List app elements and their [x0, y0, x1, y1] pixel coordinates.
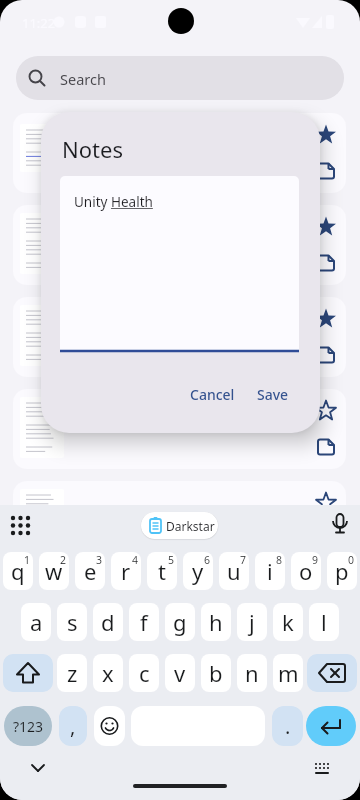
- button[interactable]: .: [272, 706, 303, 746]
- button[interactable]: d: [93, 603, 123, 641]
- staticText: Save: [257, 385, 289, 404]
- button[interactable]: Search: [16, 56, 344, 100]
- button[interactable]: f: [129, 603, 159, 641]
- staticText: h: [209, 607, 223, 637]
- button[interactable]: z: [57, 654, 87, 692]
- button[interactable]: [306, 706, 356, 746]
- staticText: 9: [312, 553, 319, 567]
- staticText: Unity Health: [74, 193, 153, 211]
- button[interactable]: Save: [247, 380, 299, 408]
- button[interactable]: b: [201, 654, 231, 692]
- staticText: s: [67, 607, 78, 637]
- staticText: 5: [168, 553, 175, 567]
- staticText: z: [67, 658, 78, 688]
- button[interactable]: n: [237, 654, 267, 692]
- staticText: b: [209, 658, 223, 688]
- staticText: l: [321, 607, 327, 637]
- staticText: j: [249, 607, 255, 637]
- staticText: g: [173, 607, 187, 637]
- button[interactable]: g: [165, 603, 195, 641]
- staticText: n: [245, 658, 259, 688]
- button[interactable]: [13, 481, 346, 561]
- button[interactable]: ?123: [4, 706, 52, 746]
- button[interactable]: [75, 552, 105, 590]
- button[interactable]: s: [57, 603, 87, 641]
- button[interactable]: j: [237, 603, 267, 641]
- button[interactable]: [183, 552, 213, 590]
- staticText: v: [174, 658, 186, 688]
- staticText: 2: [60, 553, 67, 567]
- button[interactable]: m: [273, 654, 303, 692]
- button[interactable]: k: [273, 603, 303, 641]
- staticText: Darkstar: [166, 518, 215, 534]
- staticText: d: [101, 607, 115, 637]
- staticText: x: [102, 658, 114, 688]
- staticText: e: [84, 556, 97, 586]
- staticText: p: [335, 556, 349, 586]
- button[interactable]: [94, 706, 125, 746]
- button[interactable]: [255, 552, 285, 590]
- button[interactable]: [13, 205, 346, 285]
- button[interactable]: [291, 552, 321, 590]
- staticText: c: [139, 658, 150, 688]
- staticText: 0: [348, 553, 355, 567]
- button[interactable]: [327, 552, 357, 590]
- staticText: u: [227, 556, 241, 586]
- button[interactable]: a: [21, 603, 51, 641]
- button[interactable]: [111, 552, 141, 590]
- button[interactable]: [13, 113, 346, 193]
- button[interactable]: [147, 552, 177, 590]
- button[interactable]: [219, 552, 249, 590]
- staticText: .: [285, 713, 291, 740]
- staticText: o: [299, 556, 313, 586]
- button[interactable]: [13, 389, 346, 469]
- staticText: 6: [204, 553, 211, 567]
- staticText: ?123: [13, 717, 44, 736]
- staticText: Cancel: [190, 385, 235, 404]
- staticText: 8: [276, 553, 283, 567]
- button[interactable]: x: [93, 654, 123, 692]
- button[interactable]: [3, 654, 53, 692]
- button[interactable]: [3, 552, 33, 590]
- staticText: ,: [70, 713, 76, 740]
- button[interactable]: l: [309, 603, 339, 641]
- staticText: w: [45, 556, 63, 586]
- button[interactable]: Cancel: [181, 380, 243, 408]
- button[interactable]: v: [165, 654, 195, 692]
- button[interactable]: [39, 552, 69, 590]
- staticText: 7: [240, 553, 247, 567]
- staticText: Notes: [62, 134, 123, 164]
- staticText: q: [11, 556, 25, 586]
- staticText: m: [278, 658, 299, 688]
- button[interactable]: c: [129, 654, 159, 692]
- staticText: 1: [24, 553, 31, 567]
- button[interactable]: h: [201, 603, 231, 641]
- staticText: k: [282, 607, 294, 637]
- staticText: a: [30, 607, 43, 637]
- staticText: y: [192, 556, 204, 586]
- staticText: r: [121, 556, 131, 586]
- button[interactable]: [307, 654, 357, 692]
- staticText: Search: [60, 69, 106, 89]
- button[interactable]: ,: [59, 706, 87, 746]
- staticText: 3: [96, 553, 103, 567]
- staticText: f: [140, 607, 148, 637]
- staticText: t: [158, 556, 166, 586]
- staticText: i: [267, 556, 273, 586]
- button[interactable]: Darkstar: [141, 512, 218, 539]
- button[interactable]: [13, 297, 346, 377]
- staticText: 4: [132, 553, 139, 567]
